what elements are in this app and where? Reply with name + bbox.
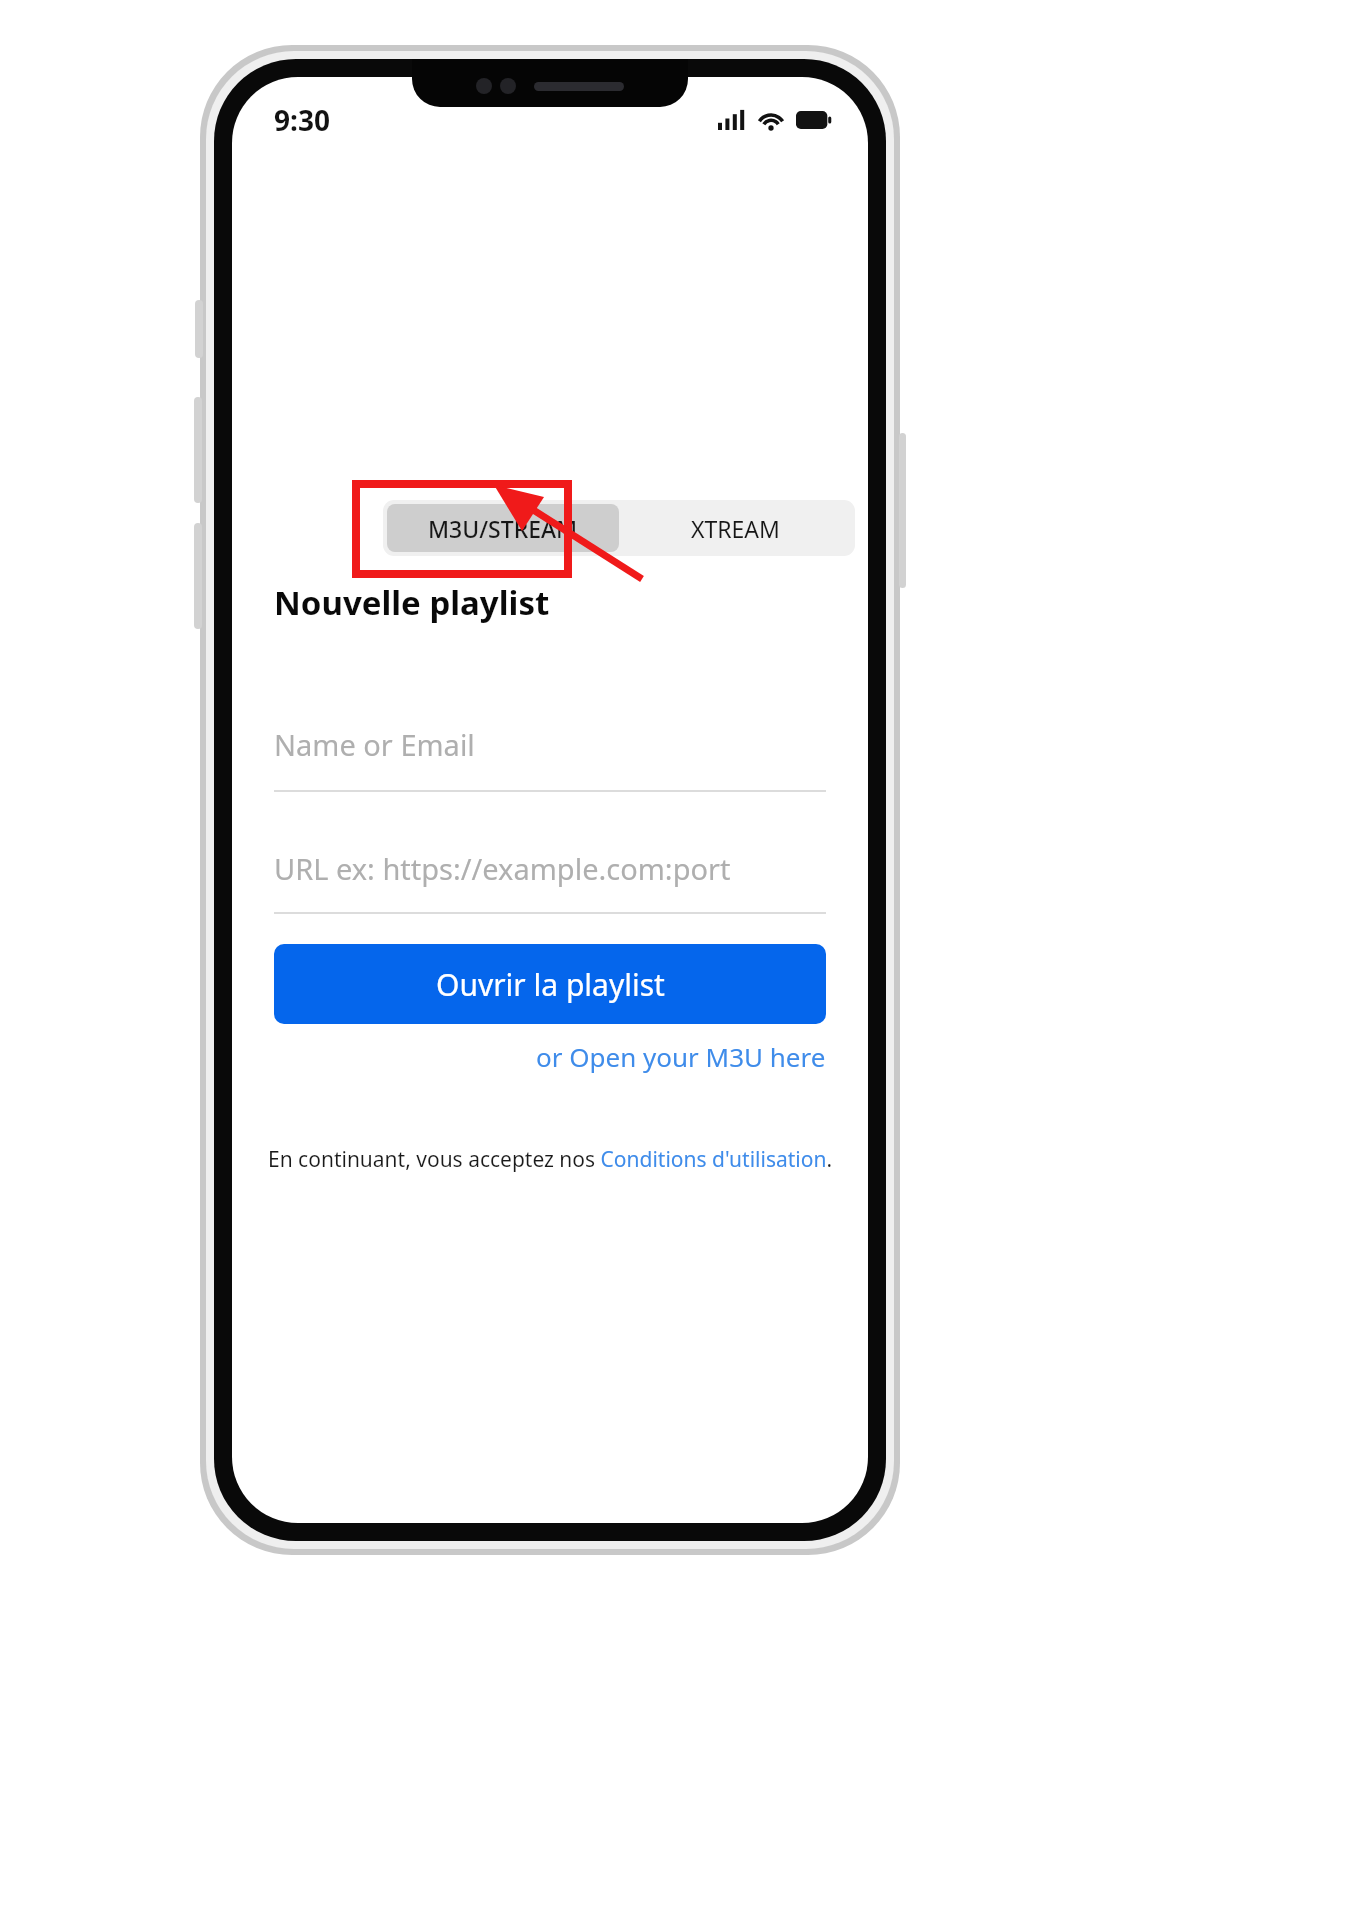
staticText: 9:30: [274, 101, 330, 139]
staticText: XTREAM: [691, 513, 780, 544]
button[interactable]: or Open your M3U here: [536, 1039, 826, 1074]
other: Battery: [796, 111, 832, 129]
button[interactable]: Ouvrir la playlist: [274, 944, 826, 1024]
staticText: Nouvelle playlist: [274, 580, 550, 625]
staticText: or Open your M3U here: [536, 1039, 826, 1074]
button[interactable]: M3U/STREAM: [387, 504, 619, 552]
staticText: Ouvrir la playlist: [436, 964, 665, 1005]
button[interactable]: En continuant, vous acceptez nos Conditi…: [268, 1145, 833, 1174]
staticText: Name or Email: [274, 725, 475, 764]
other: Wi-Fi: [757, 110, 785, 130]
staticText: En continuant, vous acceptez nos Conditi…: [268, 1145, 833, 1174]
button[interactable]: XTREAM: [619, 504, 851, 552]
staticText: M3U/STREAM: [428, 513, 578, 544]
other: Cellular signal: [718, 110, 746, 130]
staticText: URL ex: https://example.com:port: [274, 849, 731, 888]
